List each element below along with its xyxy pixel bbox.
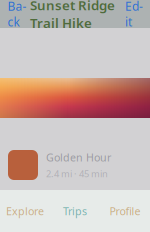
- button[interactable]: Back: [6, 3, 28, 25]
- button[interactable]: Profile: [100, 190, 150, 232]
- staticText: Trips: [63, 204, 87, 218]
- button[interactable]: Explore: [0, 190, 50, 232]
- staticText: Explore: [6, 204, 44, 218]
- staticText: Golden Hour: [46, 150, 111, 164]
- button[interactable]: Trips: [50, 190, 100, 232]
- staticText: 2.4 mi · 45 min: [46, 167, 108, 180]
- button[interactable]: Edit: [124, 3, 144, 25]
- staticText: Back: [7, 0, 26, 30]
- staticText: Profile: [109, 204, 140, 218]
- staticText: Edit: [125, 0, 143, 30]
- staticText: Sunset Ridge Trail Hike: [30, 0, 115, 32]
